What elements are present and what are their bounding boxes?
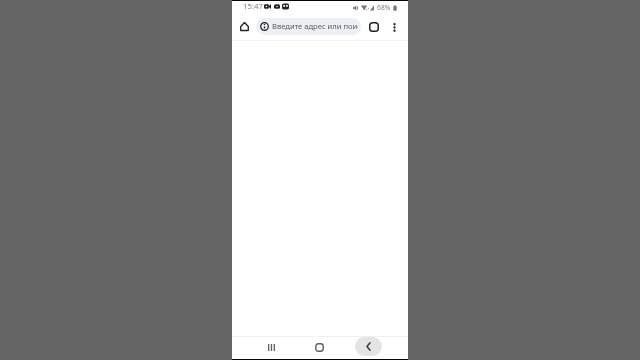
staticText: Введите адрес или поиск: [272, 21, 358, 31]
staticText: 68%: [377, 3, 391, 12]
button[interactable]: Back: [355, 337, 382, 356]
button[interactable]: Адресная строка: [256, 18, 361, 35]
button[interactable]: Home: [234, 16, 254, 36]
button[interactable]: More options: [384, 17, 404, 37]
button[interactable]: Tabs: [364, 17, 384, 37]
button[interactable]: Recent apps: [261, 337, 281, 357]
button[interactable]: Home: [309, 337, 329, 357]
staticText: 15:47: [243, 1, 263, 12]
